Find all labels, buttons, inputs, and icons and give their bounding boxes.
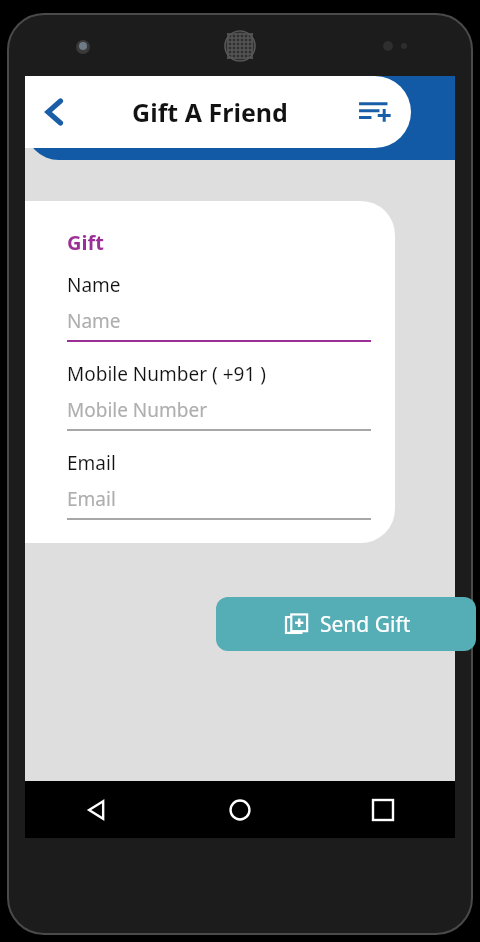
button[interactable]: Email bbox=[67, 486, 371, 521]
button[interactable]: Mobile Number bbox=[67, 397, 371, 432]
staticText: Email bbox=[67, 486, 116, 512]
button[interactable]: Home bbox=[212, 782, 268, 838]
staticText: Email bbox=[67, 450, 116, 476]
button[interactable]: Back bbox=[69, 782, 125, 838]
button[interactable]: Recents bbox=[355, 782, 411, 838]
button[interactable]: Send Gift bbox=[216, 597, 476, 651]
staticText: Gift bbox=[67, 229, 104, 256]
staticText: Mobile Number ( +91 ) bbox=[67, 361, 266, 387]
staticText: Name bbox=[67, 308, 121, 334]
button[interactable]: Add to list bbox=[337, 76, 411, 148]
staticText: Name bbox=[67, 272, 121, 298]
staticText: Gift A Friend bbox=[83, 95, 337, 129]
staticText: Mobile Number bbox=[67, 397, 208, 423]
button[interactable]: Name bbox=[67, 308, 371, 343]
button[interactable]: Back bbox=[25, 76, 83, 148]
staticText: Send Gift bbox=[320, 610, 411, 639]
